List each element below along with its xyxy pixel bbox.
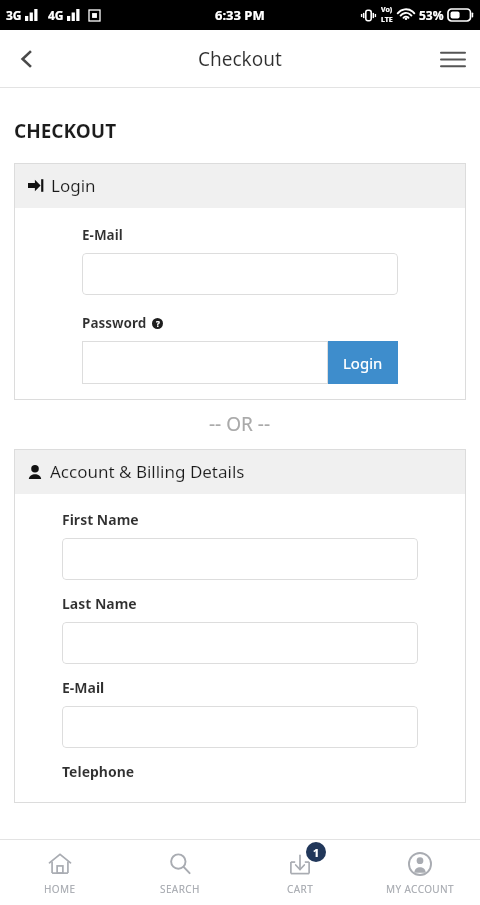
staticText: -- OR -- — [209, 411, 271, 437]
staticText: Password — [82, 314, 147, 332]
staticText: CHECKOUT — [14, 118, 117, 144]
button[interactable] — [62, 622, 418, 664]
button[interactable]: MY ACCOUNT — [360, 840, 480, 905]
staticText: 4G — [48, 7, 64, 23]
staticText: MY ACCOUNT — [386, 882, 455, 896]
staticText: 1 — [313, 845, 320, 860]
staticText: 6:33 PM — [215, 6, 265, 24]
staticText: Account & Billing Details — [50, 460, 245, 483]
staticText: CART — [287, 882, 314, 896]
staticText: 3G — [6, 7, 22, 23]
button[interactable] — [62, 706, 418, 748]
button[interactable]: Back — [0, 32, 54, 86]
staticText: Login — [51, 174, 96, 197]
staticText: 53% — [419, 7, 444, 23]
staticText: E-Mail — [62, 678, 105, 697]
staticText: Vo) — [381, 5, 393, 15]
button[interactable]: 1 — [240, 840, 360, 905]
staticText: SEARCH — [160, 882, 200, 896]
staticText: Checkout — [198, 46, 282, 72]
button[interactable]: Menu — [426, 32, 480, 86]
button[interactable] — [62, 538, 418, 580]
staticText: First Name — [62, 510, 139, 529]
staticText: Last Name — [62, 594, 137, 613]
staticText: ? — [156, 318, 160, 329]
staticText: Login — [343, 353, 383, 373]
button[interactable] — [82, 253, 398, 295]
staticText: LTE — [381, 15, 393, 25]
button[interactable] — [82, 341, 328, 384]
staticText: Telephone — [62, 762, 135, 781]
button[interactable]: Login — [328, 341, 398, 384]
button[interactable]: HOME — [0, 840, 120, 905]
button[interactable]: SEARCH — [120, 840, 240, 905]
staticText: HOME — [44, 882, 76, 896]
staticText: E-Mail — [82, 226, 123, 244]
